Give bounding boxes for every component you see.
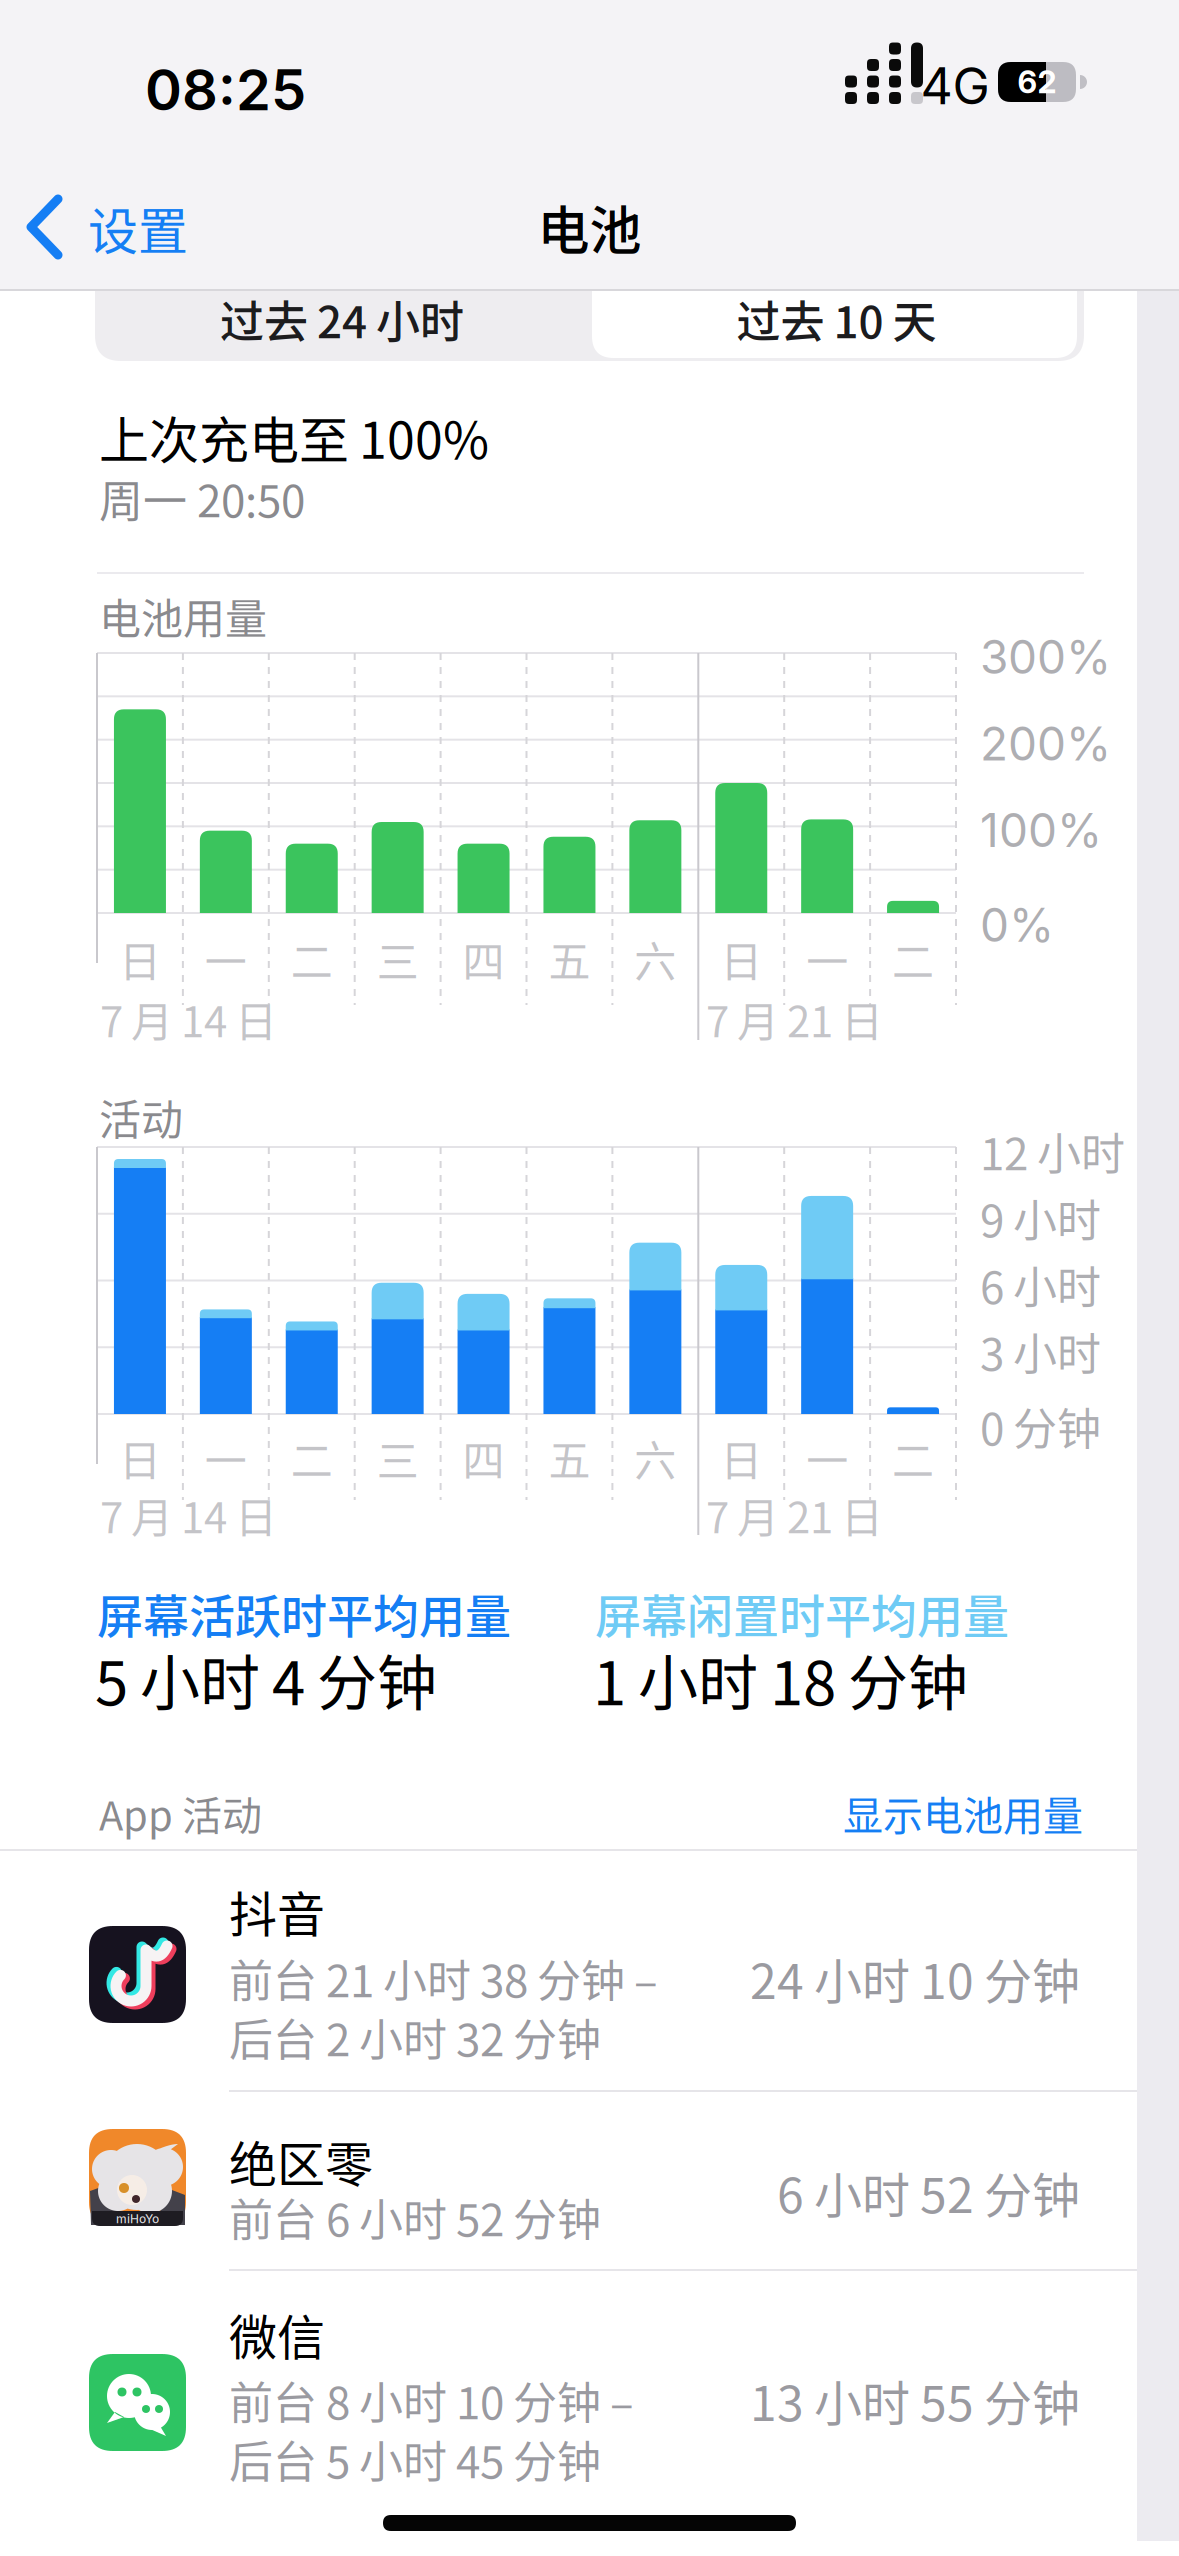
staticText: 日: [119, 1428, 161, 1488]
staticText: 300%: [980, 629, 1111, 685]
staticText: 62: [1017, 63, 1056, 101]
staticText: 五: [548, 1428, 590, 1488]
staticText: 6 小时: [980, 1253, 1101, 1316]
staticText: 二: [892, 1428, 934, 1488]
staticText: 200%: [980, 716, 1111, 771]
staticText: 日: [720, 929, 762, 989]
staticText: 100%: [980, 802, 1102, 858]
button[interactable]: 微信: [0, 2270, 1179, 2500]
staticText: 24 小时 10 分钟: [750, 1943, 1080, 2013]
staticText: 三: [377, 929, 419, 989]
staticText: 4G: [920, 56, 989, 116]
button[interactable]: miHoYo: [0, 2091, 1179, 2270]
staticText: 13 小时 55 分钟: [750, 2365, 1080, 2435]
staticText: 五: [548, 929, 590, 989]
staticText: 7 月 14 日: [100, 989, 277, 1049]
button[interactable]: 过去 24 小时: [95, 287, 589, 351]
staticText: 08:25: [145, 56, 306, 124]
button[interactable]: 抖音: [0, 1850, 1179, 2091]
staticText: 一: [205, 929, 247, 989]
staticText: 12 小时: [980, 1119, 1125, 1183]
staticText: 设置: [88, 192, 188, 264]
staticText: 屏幕活跃时平均用量: [97, 1580, 511, 1646]
staticText: 二: [291, 929, 333, 989]
staticText: 二: [291, 1428, 333, 1488]
staticText: 一: [806, 929, 848, 989]
button[interactable]: 设置: [20, 191, 205, 263]
staticText: 过去 24 小时: [220, 287, 464, 351]
staticText: 7 月 14 日: [100, 1485, 277, 1545]
staticText: 7 月 21 日: [706, 989, 883, 1049]
staticText: 后台 2 小时 32 分钟: [229, 2005, 601, 2069]
staticText: 周一 20:50: [99, 466, 305, 530]
staticText: 过去 10 天: [736, 287, 936, 351]
staticText: 1 小时 18 分钟: [593, 1636, 968, 1722]
staticText: 屏幕闲置时平均用量: [595, 1580, 1009, 1646]
staticText: 后台 5 小时 45 分钟: [229, 2427, 601, 2491]
staticText: 抖音: [229, 1876, 325, 1946]
staticText: 3 小时: [980, 1319, 1101, 1383]
staticText: 前台 21 小时 38 分钟 –: [229, 1946, 658, 2010]
staticText: 电池: [537, 189, 641, 265]
staticText: miHoYo: [116, 2212, 159, 2226]
staticText: 前台 6 小时 52 分钟: [229, 2185, 601, 2249]
staticText: 四: [463, 1428, 505, 1488]
staticText: 显示电池用量: [843, 1784, 1083, 1842]
staticText: 一: [806, 1428, 848, 1488]
staticText: 活动: [99, 1087, 183, 1147]
staticText: 0 分钟: [980, 1394, 1101, 1458]
staticText: 9 小时: [980, 1186, 1101, 1250]
button[interactable]: 过去 10 天: [592, 291, 1081, 358]
button[interactable]: 显示电池用量: [843, 1784, 1083, 1842]
staticText: 6 小时 52 分钟: [777, 2157, 1080, 2227]
staticText: 上次充电至 100%: [99, 401, 489, 473]
staticText: 5 小时 4 分钟: [95, 1636, 437, 1722]
staticText: 日: [119, 929, 161, 989]
staticText: 一: [205, 1428, 247, 1488]
staticText: 四: [463, 929, 505, 989]
staticText: 三: [377, 1428, 419, 1488]
staticText: 微信: [229, 2299, 325, 2369]
staticText: 前台 8 小时 10 分钟 –: [229, 2368, 634, 2432]
staticText: App 活动: [99, 1784, 262, 1842]
staticText: 7 月 21 日: [706, 1485, 883, 1545]
staticText: 日: [720, 1428, 762, 1488]
staticText: 电池用量: [99, 586, 267, 646]
staticText: 二: [892, 929, 934, 989]
staticText: 绝区零: [229, 2126, 373, 2196]
staticText: 六: [634, 929, 676, 989]
staticText: 0%: [980, 897, 1054, 953]
staticText: 六: [634, 1428, 676, 1488]
